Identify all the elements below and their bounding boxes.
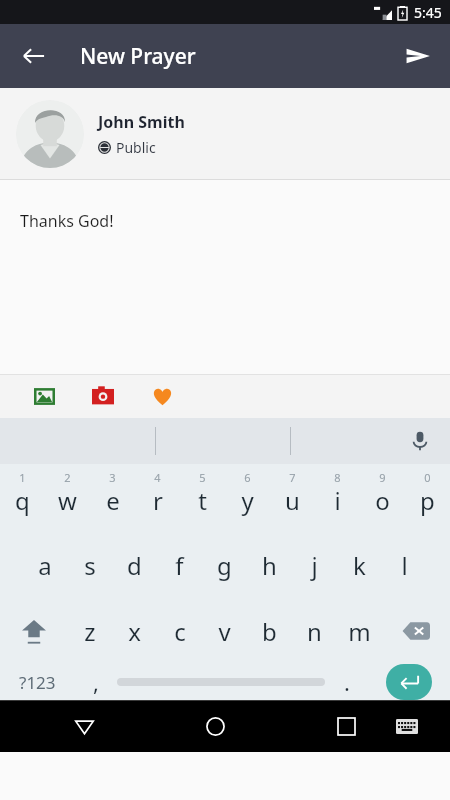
staticText: r: [153, 484, 163, 517]
button[interactable]: Thanks God!: [0, 180, 450, 374]
button[interactable]: ?123: [0, 664, 74, 700]
button[interactable]: a: [22, 532, 67, 598]
staticText: y: [241, 484, 254, 517]
button[interactable]: .: [325, 664, 368, 700]
staticText: m: [348, 615, 371, 648]
button[interactable]: 4: [135, 464, 180, 532]
button[interactable]: Voice input: [400, 421, 440, 461]
button[interactable]: g: [202, 532, 247, 598]
button[interactable]: x: [112, 598, 157, 664]
staticText: o: [375, 484, 390, 517]
button[interactable]: Back: [60, 702, 108, 750]
staticText: l: [401, 549, 408, 582]
button[interactable]: z: [67, 598, 112, 664]
staticText: v: [218, 615, 231, 648]
staticText: i: [334, 484, 341, 517]
staticText: f: [175, 549, 184, 582]
button[interactable]: Like: [144, 378, 180, 414]
staticText: a: [38, 549, 52, 582]
button[interactable]: Backspace: [382, 598, 450, 664]
button[interactable]: 7: [270, 464, 315, 532]
staticText: 7: [289, 470, 296, 485]
button[interactable]: c: [157, 598, 202, 664]
staticText: 6: [244, 470, 251, 485]
staticText: b: [262, 615, 277, 648]
button[interactable]: ,: [74, 664, 117, 700]
button[interactable]: Shift: [0, 598, 67, 664]
button[interactable]: v: [202, 598, 247, 664]
staticText: q: [15, 484, 30, 517]
staticText: e: [106, 484, 120, 517]
staticText: k: [353, 549, 366, 582]
button[interactable]: 3: [90, 464, 135, 532]
staticText: h: [262, 549, 277, 582]
button[interactable]: 0: [405, 464, 450, 532]
staticText: .: [344, 667, 350, 697]
button[interactable]: f: [157, 532, 202, 598]
button[interactable]: Home: [191, 702, 239, 750]
button[interactable]: k: [337, 532, 382, 598]
staticText: 1: [19, 470, 26, 485]
button[interactable]: Add image: [26, 378, 62, 414]
button[interactable]: 1: [0, 464, 45, 532]
staticText: u: [285, 484, 300, 517]
staticText: 0: [424, 470, 431, 485]
staticText: Public: [116, 138, 156, 157]
staticText: w: [58, 484, 77, 517]
button[interactable]: b: [247, 598, 292, 664]
staticText: d: [127, 549, 142, 582]
button[interactable]: 8: [315, 464, 360, 532]
staticText: 9: [379, 470, 386, 485]
staticText: John Smith: [98, 111, 185, 133]
staticText: ?123: [19, 671, 56, 694]
staticText: c: [174, 615, 186, 648]
button[interactable]: Send: [394, 32, 442, 80]
button[interactable]: s: [67, 532, 112, 598]
staticText: New Prayer: [80, 42, 196, 71]
button[interactable]: Recent apps: [322, 702, 370, 750]
button[interactable]: Back: [10, 32, 58, 80]
staticText: g: [217, 549, 232, 582]
button[interactable]: Keyboard: [385, 704, 429, 748]
staticText: n: [307, 615, 322, 648]
staticText: 3: [109, 470, 116, 485]
button[interactable]: d: [112, 532, 157, 598]
button[interactable]: 9: [360, 464, 405, 532]
button[interactable]: n: [292, 598, 337, 664]
staticText: s: [84, 549, 96, 582]
staticText: Thanks God!: [20, 210, 114, 232]
staticText: p: [420, 484, 435, 517]
staticText: t: [198, 484, 207, 517]
staticText: ,: [93, 667, 99, 697]
button[interactable]: Enter: [368, 664, 450, 700]
button[interactable]: 5: [180, 464, 225, 532]
button[interactable]: 2: [45, 464, 90, 532]
staticText: j: [311, 549, 318, 582]
button[interactable]: 6: [225, 464, 270, 532]
button[interactable]: j: [292, 532, 337, 598]
button[interactable]: Take photo: [85, 378, 121, 414]
staticText: 5:45: [414, 3, 442, 22]
staticText: 4: [154, 470, 161, 485]
button[interactable]: m: [337, 598, 382, 664]
staticText: 5: [199, 470, 206, 485]
button[interactable]: h: [247, 532, 292, 598]
button[interactable]: l: [382, 532, 427, 598]
staticText: 8: [334, 470, 341, 485]
staticText: 2: [64, 470, 71, 485]
staticText: x: [128, 615, 141, 648]
staticText: z: [84, 615, 96, 648]
